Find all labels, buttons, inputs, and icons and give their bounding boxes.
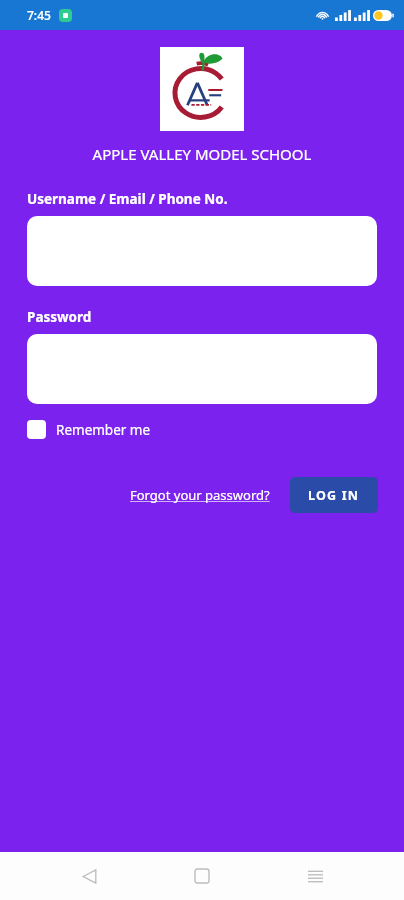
staticText: Username / Email / Phone No.: [27, 190, 228, 208]
staticText: Remember me: [56, 421, 151, 439]
staticText: Password: [27, 308, 92, 326]
staticText: APPLE VALLEY MODEL SCHOOL: [0, 144, 404, 164]
staticText: LOG IN: [308, 487, 360, 504]
staticText: Forgot your password?: [130, 486, 270, 504]
button[interactable]: Back: [65, 852, 113, 900]
button[interactable]: LOG IN: [290, 477, 378, 513]
button[interactable]: [27, 216, 377, 286]
button[interactable]: [27, 334, 377, 404]
button[interactable]: Recent apps: [291, 852, 339, 900]
button[interactable]: Remember me: [27, 420, 151, 439]
staticText: 7:45: [27, 7, 51, 23]
button[interactable]: Home: [178, 852, 226, 900]
button[interactable]: Forgot your password?: [128, 480, 272, 510]
